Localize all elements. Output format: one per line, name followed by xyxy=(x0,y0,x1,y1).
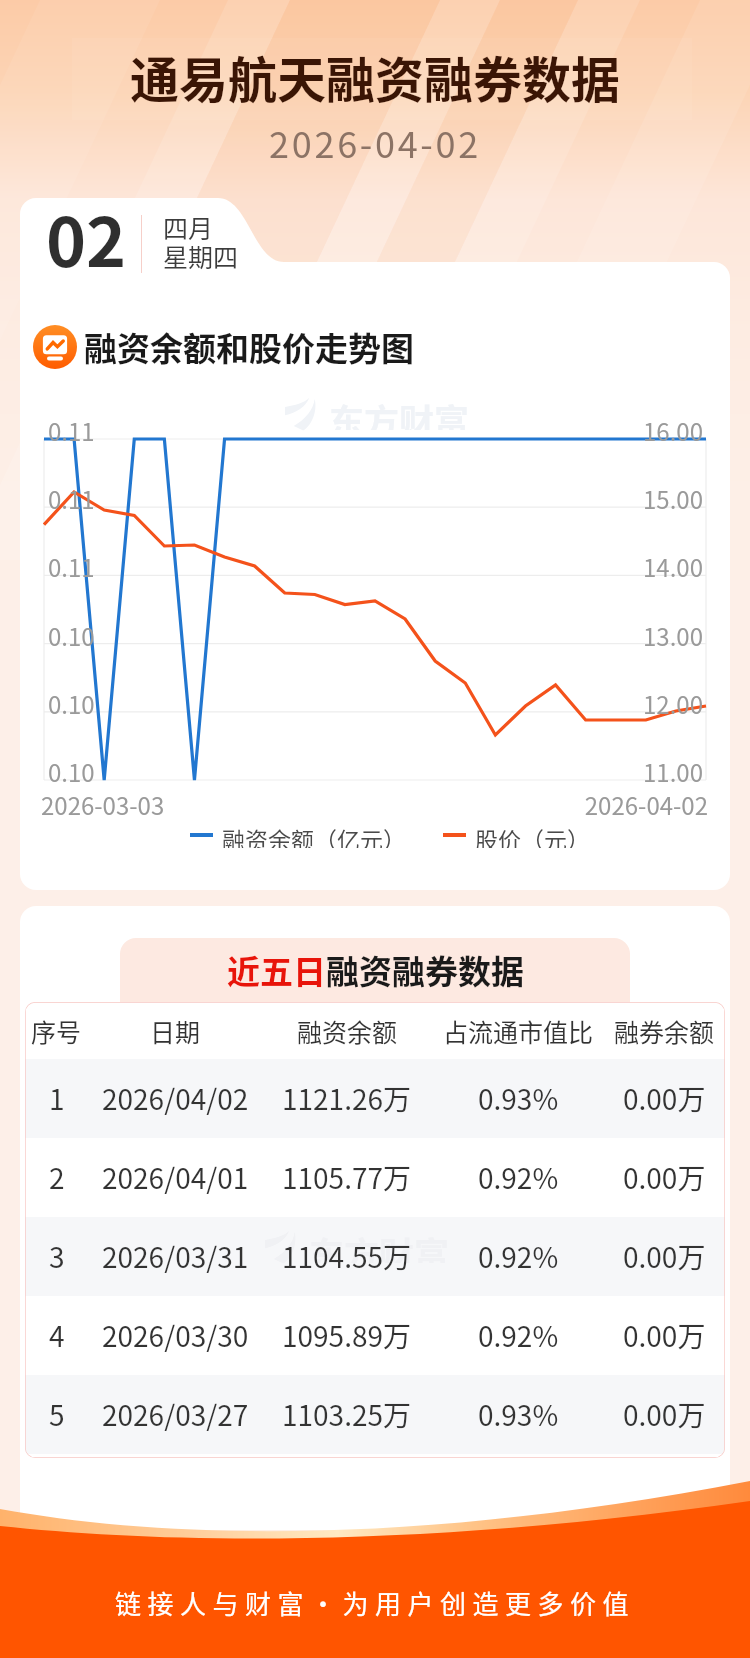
staticText: 1103.25万 xyxy=(282,1394,412,1435)
staticText: 3 xyxy=(49,1236,65,1277)
staticText: 1 xyxy=(49,1078,65,1119)
staticText: 0.92% xyxy=(478,1157,559,1198)
staticText: 0.00万 xyxy=(623,1157,706,1198)
staticText: 15.00 xyxy=(20,481,703,516)
staticText: 四月 xyxy=(163,209,214,245)
staticText: 1105.77万 xyxy=(282,1157,412,1198)
staticText: 2026/04/02 xyxy=(102,1078,249,1119)
staticText: 12.00 xyxy=(20,686,703,721)
button[interactable]: 5 xyxy=(25,1375,725,1454)
staticText: 近五日融资融券数据 xyxy=(227,946,524,994)
button[interactable]: 4 xyxy=(25,1296,725,1375)
staticText: 16.00 xyxy=(20,413,703,448)
staticText: 东方财富 xyxy=(309,1227,450,1263)
staticText: 2026-03-03 xyxy=(41,787,165,822)
button[interactable]: 东方财富 xyxy=(25,1217,725,1296)
staticText: 东方财富 xyxy=(329,394,470,430)
staticText: 5 xyxy=(49,1394,65,1435)
staticText: 日期 xyxy=(150,1013,201,1049)
staticText: 2026-04-02 xyxy=(0,116,750,168)
staticText: 14.00 xyxy=(20,549,703,584)
staticText: 0.10 xyxy=(48,754,95,789)
staticText: 占流通市值比 xyxy=(443,1013,594,1049)
staticText: 2 xyxy=(49,1157,65,1198)
button[interactable]: 2 xyxy=(25,1138,725,1217)
other: Trend chart xyxy=(33,325,77,369)
staticText: 2026/04/01 xyxy=(102,1157,249,1198)
staticText: 0.11 xyxy=(48,481,95,516)
staticText: 链接人与财富·为用户创造更多价值 xyxy=(0,1584,750,1622)
staticText: 1104.55万 xyxy=(282,1236,412,1277)
staticText: 2026-04-02 xyxy=(20,787,708,822)
staticText: 0.11 xyxy=(48,413,95,448)
staticText: 0.92% xyxy=(478,1315,559,1356)
staticText: 序号 xyxy=(31,1013,82,1049)
staticText: 0.00万 xyxy=(623,1078,706,1119)
staticText: 0.10 xyxy=(48,686,95,721)
staticText: 1095.89万 xyxy=(282,1315,412,1356)
staticText: 星期四 xyxy=(163,238,239,274)
staticText: 0.00万 xyxy=(623,1315,706,1356)
staticText: 02 xyxy=(46,188,127,286)
staticText: 4 xyxy=(49,1315,65,1356)
staticText: 0.00万 xyxy=(623,1236,706,1277)
staticText: 2026/03/31 xyxy=(102,1236,249,1277)
staticText: 0.11 xyxy=(48,549,95,584)
staticText: 0.93% xyxy=(478,1078,559,1119)
staticText: 通易航天融资融券数据 xyxy=(0,41,750,112)
staticText: 融资余额和股价走势图 xyxy=(84,323,414,371)
staticText: 融资余额 xyxy=(297,1013,398,1049)
staticText: 0.00万 xyxy=(623,1394,706,1435)
staticText: 2026/03/30 xyxy=(102,1315,249,1356)
staticText: 11.00 xyxy=(20,754,703,789)
button[interactable]: 1 xyxy=(25,1059,725,1138)
staticText: 1121.26万 xyxy=(282,1078,412,1119)
staticText: 13.00 xyxy=(20,618,703,653)
staticText: 融券余额 xyxy=(614,1013,715,1049)
staticText: 2026/03/27 xyxy=(102,1394,249,1435)
staticText: 0.10 xyxy=(48,618,95,653)
staticText: 股价（元） xyxy=(475,822,590,848)
staticText: 0.92% xyxy=(478,1236,559,1277)
button[interactable]: Trend chart xyxy=(33,323,414,371)
staticText: 融资余额（亿元） xyxy=(222,822,406,848)
staticText: 0.93% xyxy=(478,1394,559,1435)
